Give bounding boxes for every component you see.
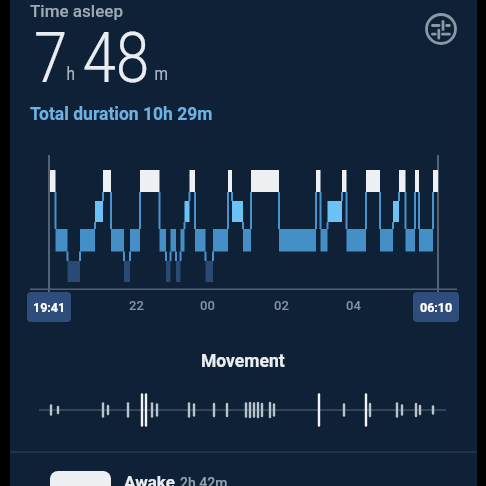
button[interactable]: 19:41 — [27, 292, 71, 322]
staticText: 22 — [129, 298, 144, 313]
staticText: 02 — [274, 298, 289, 313]
staticText: 06:10 — [420, 300, 453, 315]
staticText: Total duration 10h 29m — [30, 104, 213, 125]
button[interactable] — [424, 12, 458, 46]
staticText: m — [155, 63, 168, 84]
button[interactable]: 06:10 — [413, 292, 459, 322]
staticText: Time asleep — [30, 1, 123, 21]
staticText: Movement — [201, 351, 285, 372]
staticText: 04 — [346, 298, 361, 313]
staticText: 00 — [200, 298, 215, 313]
staticText: 7 — [34, 17, 67, 99]
staticText: 19:41 — [33, 300, 66, 315]
staticText: 48 — [83, 17, 149, 99]
staticText: 2h 42m — [180, 475, 228, 486]
button[interactable]: Awake — [50, 471, 228, 486]
staticText: h — [66, 63, 75, 84]
staticText: Awake — [124, 472, 175, 486]
